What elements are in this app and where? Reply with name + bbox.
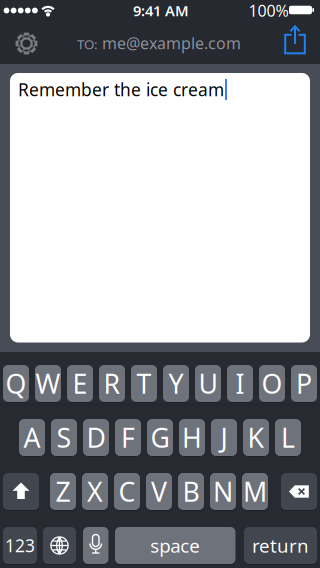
- button[interactable]: Shift: [3, 473, 39, 510]
- staticText: K: [247, 420, 264, 455]
- button[interactable]: Next keyboard: [43, 527, 76, 564]
- button[interactable]: M: [242, 473, 268, 510]
- staticText: L: [281, 420, 295, 455]
- button[interactable]: U: [195, 365, 221, 402]
- staticText: Remember the ice cream: [18, 78, 224, 101]
- staticText: 100%: [248, 0, 288, 21]
- button[interactable]: I: [227, 365, 253, 402]
- button[interactable]: P: [291, 365, 317, 402]
- button[interactable]: return: [244, 527, 317, 564]
- staticText: A: [23, 420, 40, 455]
- staticText: X: [87, 474, 103, 509]
- staticText: D: [86, 420, 105, 455]
- staticText: M: [243, 474, 267, 509]
- staticText: P: [296, 366, 312, 401]
- staticText: return: [252, 533, 309, 558]
- staticText: TO:: [77, 35, 98, 53]
- staticText: F: [121, 420, 135, 455]
- staticText: 9:41 AM: [133, 1, 189, 20]
- staticText: S: [56, 420, 71, 455]
- button[interactable]: B: [178, 473, 204, 510]
- button[interactable]: N: [210, 473, 236, 510]
- button[interactable]: Settings: [4, 21, 48, 65]
- staticText: V: [151, 474, 167, 509]
- button[interactable]: D: [83, 419, 109, 456]
- button[interactable]: Q: [3, 365, 29, 402]
- button[interactable]: Dictate: [83, 527, 108, 564]
- staticText: me@example.com: [102, 32, 241, 54]
- staticText: 123: [5, 534, 35, 557]
- button[interactable]: W: [35, 365, 61, 402]
- button[interactable]: R: [99, 365, 125, 402]
- button[interactable]: E: [67, 365, 93, 402]
- staticText: H: [182, 420, 202, 455]
- staticText: J: [220, 420, 227, 455]
- staticText: I: [235, 366, 244, 401]
- staticText: Y: [168, 366, 183, 401]
- staticText: Z: [55, 474, 70, 509]
- staticText: B: [182, 474, 199, 509]
- button[interactable]: C: [114, 473, 140, 510]
- staticText: O: [261, 366, 282, 401]
- staticText: C: [118, 474, 135, 509]
- staticText: N: [213, 474, 233, 509]
- button[interactable]: Share: [273, 18, 317, 62]
- staticText: G: [150, 420, 169, 455]
- button[interactable]: F: [115, 419, 141, 456]
- button[interactable]: 123: [3, 527, 37, 564]
- staticText: U: [198, 366, 217, 401]
- staticText: W: [35, 366, 60, 401]
- button[interactable]: Y: [163, 365, 189, 402]
- button[interactable]: space: [115, 527, 235, 564]
- staticText: R: [103, 366, 120, 401]
- button[interactable]: G: [147, 419, 173, 456]
- button[interactable]: Delete: [281, 473, 317, 510]
- button[interactable]: S: [51, 419, 77, 456]
- button[interactable]: A: [19, 419, 45, 456]
- button[interactable]: K: [243, 419, 269, 456]
- button[interactable]: Z: [50, 473, 76, 510]
- button[interactable]: H: [179, 419, 205, 456]
- button[interactable]: J: [211, 419, 237, 456]
- staticText: space: [150, 533, 200, 558]
- button[interactable]: O: [259, 365, 285, 402]
- button[interactable]: T: [131, 365, 157, 402]
- staticText: T: [136, 366, 151, 401]
- button[interactable]: L: [275, 419, 301, 456]
- staticText: Q: [5, 366, 26, 401]
- staticText: E: [72, 366, 87, 401]
- button[interactable]: X: [82, 473, 108, 510]
- button[interactable]: V: [146, 473, 172, 510]
